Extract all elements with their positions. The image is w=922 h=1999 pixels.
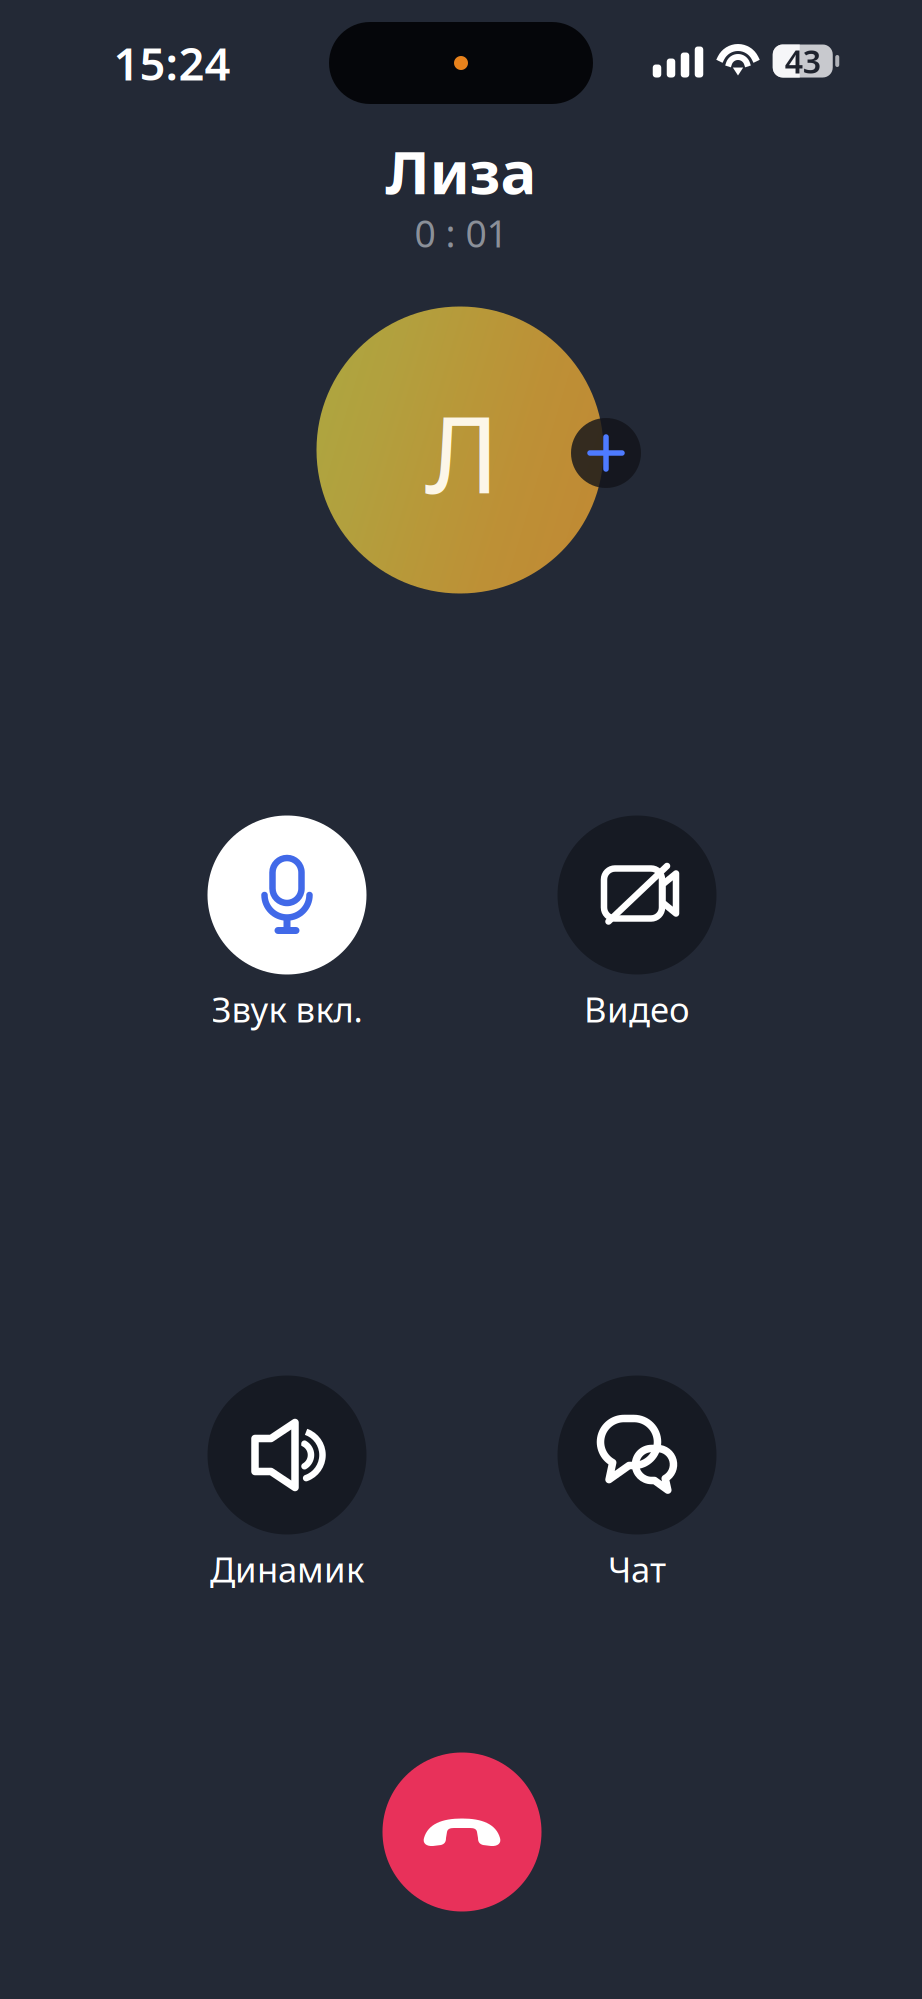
staticText: Чат	[608, 1546, 666, 1592]
button[interactable]: Чат	[492, 1397, 782, 1627]
staticText: Лиза	[385, 131, 536, 211]
staticText: Динамик	[210, 1546, 364, 1592]
staticText: Звук вкл.	[211, 986, 362, 1032]
button[interactable]: Звук вкл.	[142, 837, 432, 1067]
button[interactable]: Add participant	[571, 418, 641, 488]
staticText: Видео	[584, 986, 690, 1032]
button[interactable]: Динамик	[142, 1397, 432, 1627]
staticText: 0 : 01	[414, 208, 507, 258]
button[interactable]: Видео	[492, 837, 782, 1067]
button[interactable]: End call	[382, 1752, 541, 1911]
staticText: 15:24	[113, 33, 230, 93]
staticText: 43	[785, 40, 821, 82]
staticText: Л	[425, 381, 499, 523]
